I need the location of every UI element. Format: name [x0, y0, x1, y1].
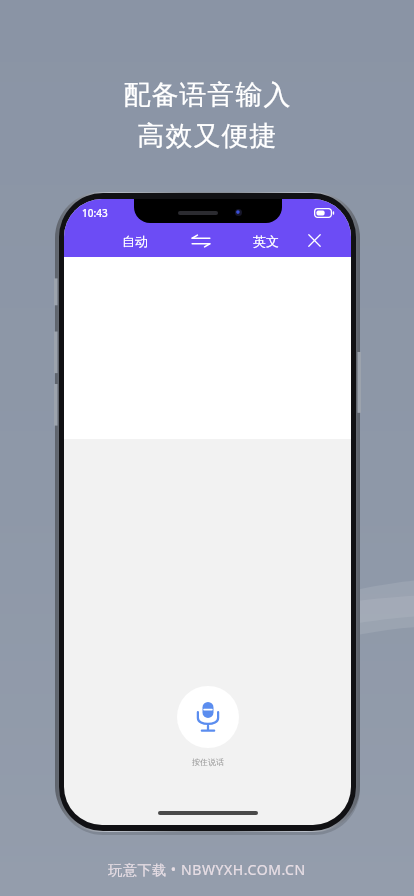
button[interactable]: Hold to speak: [177, 686, 239, 748]
staticText: 10:43: [82, 206, 108, 220]
staticText: 玩意下载 • NBWYXH.COM.CN: [108, 860, 306, 879]
button[interactable]: Close: [294, 224, 334, 257]
staticText: 自动: [122, 233, 148, 249]
staticText: 配备语音输入: [123, 78, 291, 112]
staticText: 英文: [253, 233, 279, 249]
staticText: 高效又便捷: [137, 119, 277, 153]
staticText: 按住说话: [192, 757, 224, 767]
button[interactable]: Swap languages: [178, 224, 224, 257]
button[interactable]: 自动: [106, 224, 164, 257]
button[interactable]: 英文: [238, 224, 294, 257]
